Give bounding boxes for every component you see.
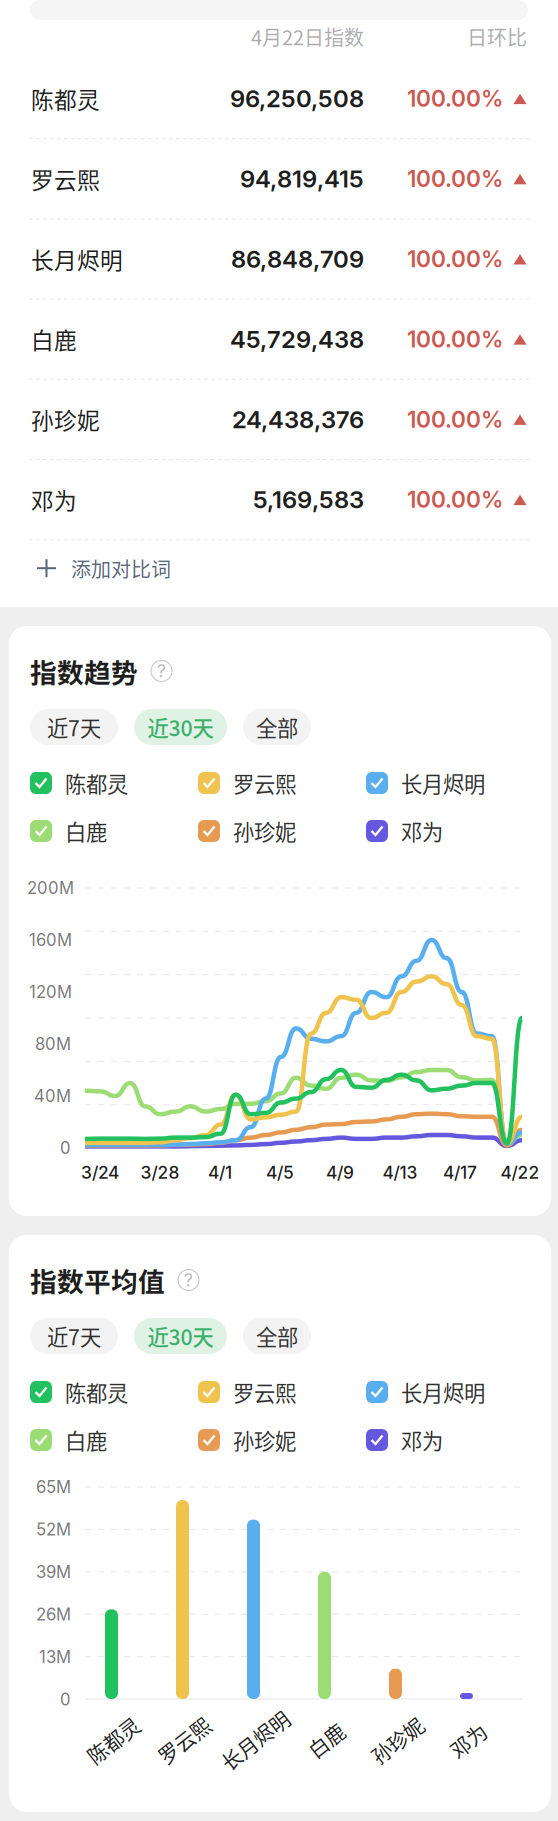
staticText: 96,250,508 [230, 84, 364, 113]
staticText: 100.00% [407, 165, 503, 192]
staticText: 陈都灵 [65, 768, 128, 798]
button[interactable]: 白鹿 [30, 1416, 198, 1464]
staticText: 指数平均值 [30, 1261, 165, 1299]
staticText: 长月烬明 [215, 1726, 295, 1755]
staticText: 0 [60, 1689, 71, 1710]
button[interactable]: 白鹿 [30, 807, 198, 855]
button[interactable]: 长月烬明 [366, 759, 534, 807]
staticText: 全部 [256, 1321, 298, 1351]
staticText: 邓为 [448, 1726, 488, 1755]
button[interactable]: 邓为 [0, 460, 558, 539]
button[interactable]: 近7天 [30, 1318, 118, 1354]
button[interactable]: 全部 [243, 709, 311, 745]
staticText: 白鹿 [306, 1726, 346, 1755]
staticText: 陈都灵 [83, 1726, 143, 1755]
staticText: 26M [36, 1604, 71, 1625]
staticText: 4/17 [443, 1162, 477, 1183]
staticText: 4/22 [500, 1162, 539, 1183]
button[interactable]: 孙珍妮 [198, 807, 366, 855]
staticText: 全部 [256, 712, 298, 742]
button[interactable]: 邓为 [366, 1416, 534, 1464]
staticText: 39M [36, 1562, 71, 1582]
staticText: 200M [27, 878, 74, 898]
staticText: 4/5 [266, 1162, 294, 1183]
staticText: 邓为 [401, 1425, 443, 1455]
staticText: 100.00% [407, 486, 503, 513]
staticText: 100.00% [407, 325, 503, 353]
staticText: 近7天 [47, 712, 101, 742]
staticText: 陈都灵 [65, 1377, 128, 1407]
staticText: 添加对比词 [71, 554, 171, 583]
staticText: 86,848,709 [231, 244, 364, 273]
staticText: 13M [39, 1647, 71, 1667]
staticText: 0 [60, 1138, 71, 1158]
staticText: 160M [29, 930, 72, 950]
staticText: 3/24 [81, 1162, 119, 1183]
button[interactable]: 近30天 [134, 1318, 227, 1354]
staticText: 罗云熙 [233, 1377, 296, 1407]
button[interactable]: 罗云熙 [198, 1368, 366, 1416]
button[interactable]: 罗云熙 [0, 139, 558, 218]
staticText: 罗云熙 [31, 162, 100, 195]
staticText: 4月22日指数 [251, 22, 364, 51]
button[interactable]: 邓为 [366, 807, 534, 855]
staticText: 4/9 [326, 1162, 354, 1183]
staticText: 24,438,376 [232, 405, 364, 434]
staticText: 孙珍妮 [233, 1425, 296, 1455]
staticText: 孙珍妮 [233, 816, 296, 846]
staticText: 邓为 [401, 816, 443, 846]
staticText: 白鹿 [65, 1425, 107, 1455]
staticText: 陈都灵 [31, 82, 100, 115]
staticText: 40M [34, 1086, 71, 1106]
staticText: 100.00% [407, 85, 503, 112]
staticText: 长月烬明 [31, 243, 123, 275]
staticText: 孙珍妮 [31, 403, 100, 436]
staticText: 指数趋势 [30, 652, 138, 690]
button[interactable]: 添加对比词 [0, 540, 558, 596]
staticText: 罗云熙 [233, 768, 296, 798]
staticText: ? [184, 1269, 193, 1290]
staticText: ? [157, 660, 166, 681]
button[interactable]: 罗云熙 [198, 759, 366, 807]
button[interactable]: 陈都灵 [0, 59, 558, 138]
staticText: 白鹿 [31, 323, 77, 356]
staticText: 长月烬明 [401, 1377, 485, 1407]
button[interactable]: 白鹿 [0, 300, 558, 379]
staticText: 120M [29, 982, 72, 1002]
staticText: 孙珍妮 [367, 1726, 427, 1755]
staticText: 100.00% [407, 245, 503, 273]
staticText: 邓为 [31, 483, 77, 516]
staticText: 100.00% [407, 406, 503, 433]
staticText: 近30天 [147, 712, 213, 742]
staticText: 近7天 [47, 1321, 101, 1351]
button[interactable]: 近30天 [134, 709, 227, 745]
staticText: 52M [36, 1519, 71, 1540]
staticText: 94,819,415 [240, 164, 364, 193]
staticText: 4/13 [382, 1162, 417, 1183]
button[interactable]: 孙珍妮 [198, 1416, 366, 1464]
button[interactable]: 长月烬明 [366, 1368, 534, 1416]
staticText: 80M [35, 1034, 71, 1054]
staticText: 白鹿 [65, 816, 107, 846]
staticText: 日环比 [467, 22, 527, 51]
button[interactable]: 陈都灵 [30, 1368, 198, 1416]
button[interactable]: 孙珍妮 [0, 380, 558, 459]
staticText: 近30天 [147, 1321, 213, 1351]
staticText: 45,729,438 [230, 325, 364, 354]
button[interactable]: 近7天 [30, 709, 118, 745]
staticText: 65M [36, 1477, 71, 1497]
button[interactable]: 陈都灵 [30, 759, 198, 807]
button[interactable]: 全部 [243, 1318, 311, 1354]
staticText: 5,169,583 [253, 485, 364, 514]
staticText: 长月烬明 [401, 768, 485, 798]
staticText: 罗云熙 [154, 1726, 214, 1755]
staticText: 3/28 [140, 1162, 179, 1183]
staticText: 4/1 [208, 1162, 232, 1183]
button[interactable]: 长月烬明 [0, 219, 558, 299]
